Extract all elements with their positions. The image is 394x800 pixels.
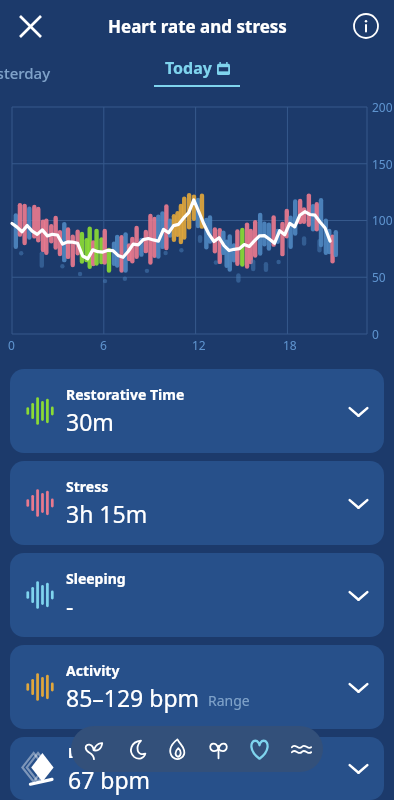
staticText: 67 bpm xyxy=(68,764,151,795)
staticText: - xyxy=(66,590,74,621)
button[interactable]: Sleeping xyxy=(10,553,384,637)
staticText: 0 xyxy=(8,337,15,353)
button[interactable]: Yesterday xyxy=(0,60,57,86)
button[interactable]: Breathing xyxy=(282,730,320,768)
staticText: Heart rate and stress xyxy=(108,15,287,38)
button[interactable]: Restorative Time xyxy=(10,369,384,453)
staticText: 150 xyxy=(372,156,393,172)
button[interactable]: Heart rate xyxy=(240,730,278,768)
staticText: 18 xyxy=(283,337,297,353)
staticText: 30m xyxy=(66,406,114,437)
button[interactable]: Restorative xyxy=(74,730,112,768)
button[interactable]: Expand Stress xyxy=(332,461,384,545)
button[interactable]: Expand Restorative Time xyxy=(332,369,384,453)
staticText: Stress xyxy=(66,477,109,496)
staticText: Restorative Time xyxy=(66,385,185,404)
button[interactable]: Stress xyxy=(199,730,237,768)
staticText: Today xyxy=(165,57,212,79)
staticText: 12 xyxy=(192,337,206,353)
staticText: 0 xyxy=(372,326,379,342)
button[interactable]: Close xyxy=(8,4,52,48)
staticText: 85–129 bpm xyxy=(66,682,200,713)
button[interactable]: Information xyxy=(344,4,388,48)
button[interactable]: Expand Sleeping xyxy=(332,553,384,637)
button[interactable]: Sleep xyxy=(116,730,154,768)
staticText: 3h 15m xyxy=(66,498,148,529)
button[interactable]: Expand Daytime xyxy=(332,737,384,800)
button[interactable]: Activity xyxy=(10,645,384,729)
staticText: 200 xyxy=(372,99,393,115)
button[interactable]: Daytime xyxy=(10,737,384,800)
staticText: Activity xyxy=(66,661,120,680)
staticText: 6 xyxy=(100,337,107,353)
button[interactable]: Today xyxy=(154,57,240,87)
staticText: Sleeping xyxy=(66,569,126,588)
staticText: 100 xyxy=(372,212,393,228)
button[interactable]: Stress xyxy=(10,461,384,545)
button[interactable]: Expand Activity xyxy=(332,645,384,729)
staticText: 50 xyxy=(372,269,386,285)
staticText: Range xyxy=(208,691,250,710)
staticText: Daytime xyxy=(68,743,127,762)
button[interactable]: Calories xyxy=(157,730,195,768)
